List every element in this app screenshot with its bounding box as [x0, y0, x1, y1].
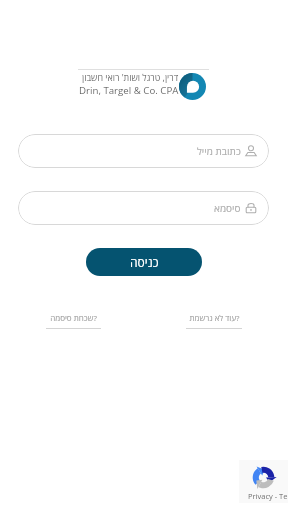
staticText: דרין, טרגל ושות' רואי חשבון — [82, 71, 179, 83]
button[interactable]: עוד לא נרשמת? — [186, 312, 242, 329]
button[interactable]: Password — [18, 191, 269, 225]
staticText: שכחת סיסמה? — [50, 312, 97, 323]
staticText: עוד לא נרשמת? — [189, 312, 240, 323]
staticText: סיסמא — [214, 201, 241, 215]
button[interactable]: reCAPTCHA Privacy Terms — [239, 460, 288, 503]
staticText: Drin, Targel & Co. CPA — [79, 84, 179, 97]
button[interactable]: כניסה — [86, 248, 202, 276]
staticText: Privacy - Terms — [248, 491, 288, 501]
button[interactable]: שכחת סיסמה? — [46, 312, 101, 329]
staticText: כתובת מייל — [197, 144, 241, 158]
button[interactable]: Email address — [18, 134, 269, 168]
staticText: כניסה — [130, 254, 159, 270]
